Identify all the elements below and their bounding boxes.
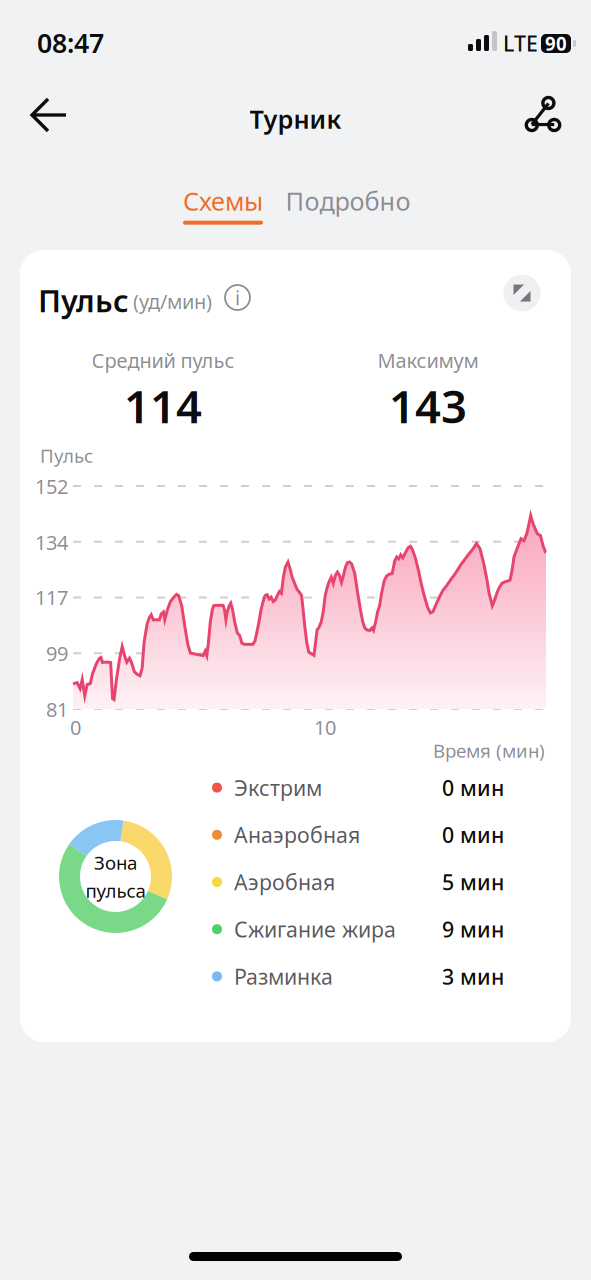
staticText: 134	[35, 529, 68, 556]
staticText: Пульс	[40, 443, 93, 468]
button[interactable]: Развернуть	[499, 270, 545, 316]
staticText: Максимум	[377, 347, 478, 374]
staticText: Время (мин)	[433, 738, 545, 763]
staticText: 0 мин	[442, 821, 504, 849]
staticText: 0 мин	[442, 773, 504, 802]
staticText: Сжигание жира	[234, 915, 396, 943]
staticText: 10	[314, 714, 336, 741]
staticText: i	[235, 284, 240, 311]
button[interactable]: Назад	[18, 85, 80, 145]
staticText: LTE	[503, 29, 538, 57]
staticText: Разминка	[234, 962, 333, 990]
staticText: 90	[545, 31, 567, 56]
staticText: Экстрим	[234, 773, 322, 802]
staticText: Анаэробная	[234, 821, 360, 849]
button[interactable]: Схемы	[168, 184, 278, 232]
staticText: 08:47	[37, 25, 104, 60]
button[interactable]: Подробно	[273, 184, 423, 232]
staticText: 3 мин	[442, 962, 504, 990]
staticText: (уд/мин)	[133, 288, 212, 315]
staticText: пульса	[85, 878, 145, 903]
staticText: 99	[46, 640, 68, 667]
staticText: 0	[70, 714, 81, 741]
staticText: Средний пульс	[91, 347, 234, 374]
staticText: 143	[389, 376, 467, 436]
staticText: 9 мин	[442, 915, 504, 943]
staticText: 152	[35, 473, 68, 500]
button[interactable]: Поделиться	[512, 84, 574, 144]
staticText: Подробно	[285, 184, 410, 218]
staticText: Зона	[94, 850, 137, 875]
staticText: Аэробная	[234, 868, 335, 896]
staticText: Пульс	[38, 280, 129, 321]
staticText: 114	[124, 376, 202, 436]
staticText: 117	[35, 584, 68, 611]
staticText: Схемы	[183, 184, 263, 218]
staticText: Турник	[249, 102, 341, 136]
staticText: 5 мин	[442, 868, 504, 896]
staticText: 81	[46, 696, 68, 723]
